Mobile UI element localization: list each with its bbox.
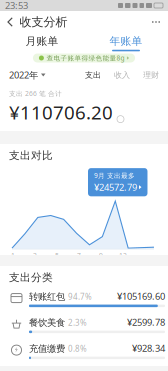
staticText: 收入 [114,70,130,80]
staticText: 理财 [143,70,159,80]
staticText: ¥105169.60 [117,290,165,302]
staticText: ¥928.34 [132,342,165,354]
button[interactable]: 转账红包 [0,286,168,312]
staticText: 支出 266 笔 合计 [9,89,62,98]
staticText: 收支分析 [19,15,67,29]
button[interactable]: 理财 [143,69,159,81]
button[interactable]: 收入 [114,69,130,81]
staticText: ¥2599.78 [127,316,165,328]
staticText: 充值缴费 [29,343,65,354]
staticText: 支出 [85,70,101,80]
staticText: 月账单 [25,35,58,48]
staticText: 餐饮美食 [29,317,65,328]
staticText: ¥24572.79 [94,181,137,193]
staticText: 2022年 [9,69,38,81]
button[interactable]: 月账单 [19,35,65,51]
staticText: 1 [11,251,15,260]
staticText: 年账单 [109,35,142,48]
staticText: 0.8% [68,343,87,354]
staticText: 94.7% [68,291,92,302]
staticText: 9 [99,251,103,260]
staticText: 12 [119,251,127,260]
staticText: 2.3% [68,317,87,328]
button[interactable]: 查电子账单得绿色能量8g [33,53,135,62]
button[interactable]: 收支分析 [0,11,75,33]
button[interactable]: More [144,11,168,33]
staticText: 查电子账单得绿色能量8g [46,54,124,62]
staticText: 支出对比 [9,149,53,162]
staticText: 7 [77,251,81,260]
staticText: 23:53 [5,0,28,12]
staticText: 3 [33,251,37,260]
button[interactable]: 餐饮美食 [0,312,168,338]
staticText: 支出分类 [9,271,53,284]
staticText: 5 [55,251,59,260]
button[interactable]: 年账单 [103,35,149,51]
staticText: 9月 支出最多 [94,171,135,180]
button[interactable]: 2022年 [9,69,45,81]
staticText: 转账红包 [29,291,65,302]
button[interactable]: 9月 支出最多 [88,168,147,196]
staticText: ¥110706.20 [9,100,113,125]
button[interactable]: 充值缴费 [0,338,168,364]
button[interactable]: 支出 [85,69,101,81]
